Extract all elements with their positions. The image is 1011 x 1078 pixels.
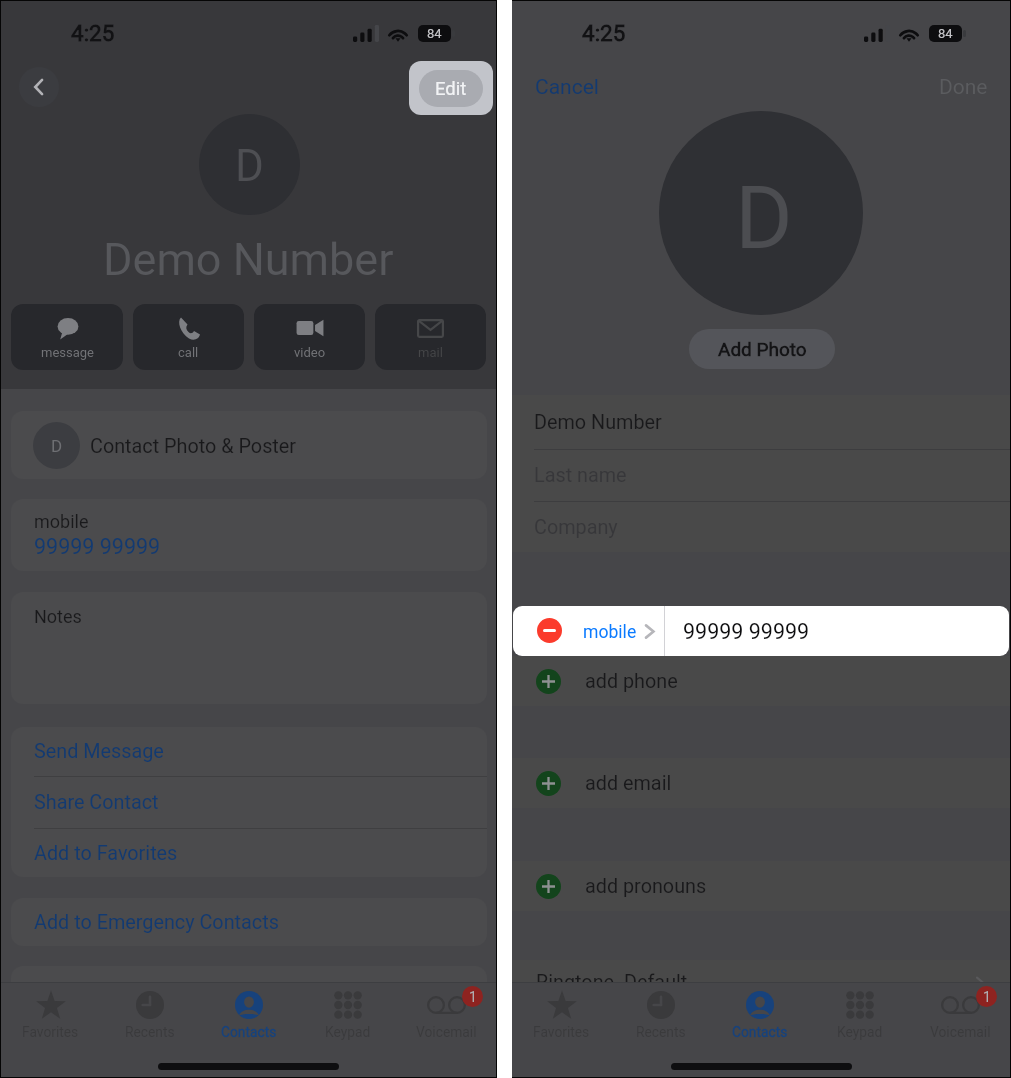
button[interactable]: Recents	[611, 983, 710, 1047]
staticText: call	[178, 345, 199, 360]
staticText: Cancel	[535, 75, 599, 100]
button[interactable]: Ringtone	[512, 960, 1010, 1004]
button[interactable]: Edit	[409, 61, 493, 115]
staticText: 4:25	[71, 20, 115, 46]
staticText: mobile	[34, 511, 89, 532]
staticText: mail	[418, 345, 443, 360]
staticText: Contacts	[732, 1024, 788, 1040]
staticText: Contacts	[221, 1024, 277, 1040]
staticText: Company	[534, 516, 618, 539]
staticText: video	[294, 345, 326, 360]
button[interactable]: Contacts	[710, 983, 810, 1047]
button[interactable]: Back	[19, 67, 59, 107]
button[interactable]: 1	[910, 983, 1010, 1047]
staticText: Share Contact	[34, 791, 159, 814]
button[interactable]: Cancel	[535, 75, 599, 100]
staticText: add pronouns	[585, 875, 707, 898]
staticText: Edit	[435, 78, 467, 100]
staticText: Favorites	[22, 1024, 79, 1040]
staticText: Ringtone	[536, 971, 615, 994]
staticText: Favorites	[533, 1024, 590, 1040]
button[interactable]: Add to Favorites	[11, 829, 487, 877]
staticText: D	[735, 166, 793, 269]
staticText: Done	[939, 75, 988, 100]
button[interactable]: Recents	[100, 983, 199, 1047]
staticText: 1	[983, 989, 991, 1005]
staticText: Recents	[636, 1024, 686, 1040]
button[interactable]: Keypad	[298, 983, 397, 1047]
button[interactable]: message	[11, 304, 123, 370]
button[interactable]: Favorites	[1, 983, 100, 1047]
button[interactable]: add pronouns	[512, 861, 1010, 911]
staticText: D	[51, 436, 63, 456]
staticText: add email	[585, 772, 672, 795]
button[interactable]: add email	[512, 758, 1010, 808]
button[interactable]: Share Contact	[11, 777, 487, 828]
staticText: Last name	[534, 464, 627, 487]
button[interactable]: add phone	[512, 656, 1010, 706]
staticText: 99999 99999	[34, 534, 161, 559]
staticText: Voicemail	[416, 1024, 477, 1040]
staticText: Recents	[125, 1024, 175, 1040]
button[interactable]: Add Photo	[689, 329, 835, 369]
staticText: 84	[938, 26, 953, 41]
staticText: Demo Number	[534, 411, 662, 434]
staticText: message	[41, 345, 94, 360]
button[interactable]: mail	[375, 304, 486, 370]
button[interactable]: Done	[939, 75, 988, 100]
staticText: Voicemail	[930, 1024, 991, 1040]
button[interactable]: mobile	[513, 606, 1009, 656]
staticText: D	[235, 140, 264, 192]
staticText: Add to Favorites	[34, 842, 178, 865]
staticText: 1	[469, 989, 477, 1005]
staticText: Keypad	[325, 1024, 371, 1040]
staticText: Default	[624, 971, 688, 994]
staticText: 4:25	[582, 20, 626, 46]
button[interactable]: Send Message	[11, 727, 487, 776]
staticText: mobile	[583, 622, 637, 643]
staticText: add phone	[585, 670, 678, 693]
staticText: Add Photo	[718, 338, 807, 360]
staticText: 99999 99999	[683, 619, 810, 644]
button[interactable]: 1	[397, 983, 496, 1047]
staticText: Send Message	[34, 740, 164, 763]
button[interactable]: Demo Number	[512, 395, 1010, 449]
button[interactable]: mobile	[11, 499, 487, 571]
staticText: Keypad	[837, 1024, 883, 1040]
button[interactable]: Contacts	[199, 983, 298, 1047]
button[interactable]: Add to Emergency Contacts	[11, 898, 487, 946]
button[interactable]: D	[11, 411, 487, 479]
staticText: Add to Emergency Contacts	[34, 911, 279, 934]
staticText: Contact Photo & Poster	[90, 435, 297, 458]
button[interactable]: call	[133, 304, 244, 370]
staticText: Demo Number	[103, 233, 394, 286]
button[interactable]: Favorites	[512, 983, 611, 1047]
button[interactable]: Keypad	[810, 983, 910, 1047]
staticText: Notes	[34, 606, 82, 627]
staticText: 84	[427, 26, 442, 41]
button[interactable]: video	[254, 304, 365, 370]
